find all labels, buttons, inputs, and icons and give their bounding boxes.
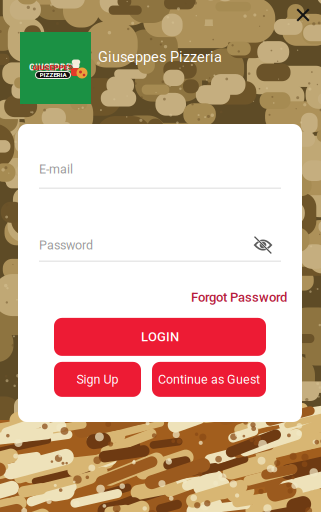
button[interactable]: Forgot Password xyxy=(191,290,287,305)
staticText: GIUSEPPE'S xyxy=(32,63,73,72)
staticText: Forgot Password xyxy=(191,290,287,305)
staticText: PIZZERIA xyxy=(39,71,66,79)
staticText: GIUSEPPE'S xyxy=(29,62,77,73)
staticText: LOGIN xyxy=(141,329,179,344)
button[interactable]: LOGIN xyxy=(54,318,266,356)
button[interactable]: Show password xyxy=(253,236,273,255)
staticText: Password xyxy=(39,238,93,252)
button[interactable]: Sign Up xyxy=(54,362,141,397)
staticText: Giuseppes Pizzeria xyxy=(98,48,222,65)
staticText: Continue as Guest xyxy=(158,372,260,387)
button[interactable]: Continue as Guest xyxy=(152,362,266,397)
button[interactable]: Close xyxy=(289,1,317,29)
staticText: E-mail xyxy=(39,162,73,177)
staticText: Sign Up xyxy=(76,372,118,387)
